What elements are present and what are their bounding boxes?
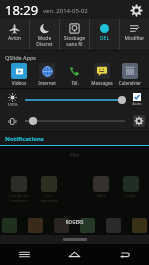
button[interactable]: Home: [49, 244, 99, 265]
button[interactable]: Mode Discret: [30, 19, 59, 50]
staticText: Gest. appareils: [34, 193, 64, 203]
button[interactable]: Brightness: [4, 93, 21, 108]
button[interactable]: Internet: [34, 63, 60, 86]
button[interactable]: [21, 94, 126, 106]
staticText: eBay: [86, 193, 116, 198]
staticText: feedly: [116, 193, 145, 198]
button[interactable]: [21, 115, 129, 127]
staticText: Notifications: [5, 135, 149, 143]
staticText: ROGERS: [0, 219, 149, 225]
button[interactable]: Settings: [127, 1, 145, 19]
staticText: Modifier: [120, 35, 149, 42]
button[interactable]: Vidéos: [6, 63, 32, 86]
button[interactable]: DEL: [90, 19, 119, 50]
staticText: Internet: [34, 80, 60, 86]
staticText: QSlide Apps: [5, 54, 149, 61]
staticText: DEL: [90, 35, 119, 42]
button[interactable]: Stockage sans fil: [60, 19, 89, 50]
staticText: Plex: [0, 152, 149, 159]
staticText: Auto: [129, 101, 145, 107]
button[interactable]: Sound settings: [133, 115, 145, 127]
button[interactable]: Recent apps: [0, 244, 49, 265]
button[interactable]: Calendrier: [117, 63, 143, 86]
button[interactable]: Auto: [129, 93, 145, 107]
button[interactable]: Volume: [4, 117, 21, 126]
staticText: Mode Discret: [30, 35, 59, 48]
staticText: Vidéos: [6, 80, 32, 86]
button[interactable]: Back: [99, 244, 149, 265]
staticText: 100%: [4, 102, 21, 108]
staticText: Calendrier: [117, 80, 143, 86]
button[interactable]: Avion: [0, 19, 29, 50]
staticText: Tél.: [62, 80, 88, 86]
staticText: Google Act henticator: [4, 193, 34, 203]
staticText: Avion: [0, 35, 29, 42]
button[interactable]: Messages: [89, 63, 115, 86]
button[interactable]: Tél.: [62, 63, 88, 86]
staticText: 18:29: [5, 1, 39, 19]
staticText: Messages: [89, 80, 115, 86]
button[interactable]: Modifier: [120, 19, 149, 50]
staticText: Stockage sans fil: [60, 35, 89, 48]
staticText: ven. 2014-05-02: [43, 7, 88, 15]
